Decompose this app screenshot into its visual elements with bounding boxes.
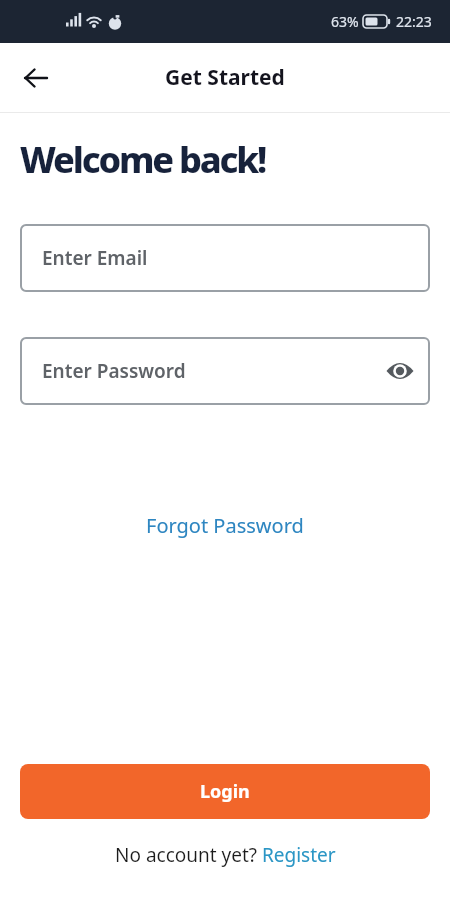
button[interactable] bbox=[18, 60, 54, 96]
button[interactable]: Enter Email bbox=[20, 224, 430, 292]
staticText: Get Started bbox=[165, 63, 285, 92]
button[interactable]: Enter Password bbox=[20, 337, 430, 405]
staticText: Enter Password bbox=[42, 358, 186, 384]
staticText: Welcome back! bbox=[20, 135, 266, 184]
button[interactable]: Login bbox=[20, 764, 430, 819]
button[interactable] bbox=[385, 356, 415, 386]
staticText: 22:23 bbox=[396, 12, 432, 31]
button[interactable]: Forgot Password bbox=[0, 512, 450, 539]
staticText: Login bbox=[200, 779, 250, 804]
button[interactable]: No account yet? Register bbox=[0, 842, 450, 868]
staticText: Enter Email bbox=[42, 245, 148, 271]
staticText: No account yet? Register bbox=[115, 842, 336, 868]
staticText: 63% bbox=[331, 12, 359, 31]
staticText: Forgot Password bbox=[146, 512, 304, 539]
